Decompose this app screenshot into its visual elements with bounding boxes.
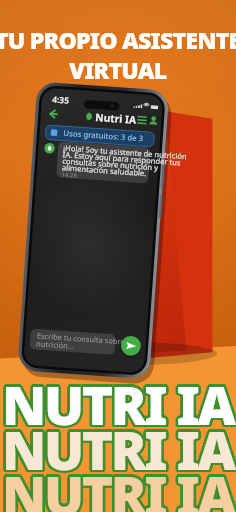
button[interactable]: Nutri IA promotional screen (0, 0, 236, 512)
